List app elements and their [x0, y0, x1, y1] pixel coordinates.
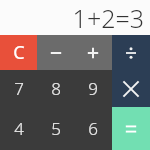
staticText: 5: [51, 117, 61, 140]
staticText: 4: [14, 117, 24, 140]
button[interactable]: 5: [37, 107, 74, 150]
staticText: 1+2=3: [72, 1, 144, 35]
staticText: 8: [51, 77, 61, 100]
button[interactable]: 8: [37, 70, 74, 107]
button[interactable]: 6: [74, 107, 112, 150]
button[interactable]: C: [0, 35, 37, 70]
staticText: C: [13, 40, 25, 65]
button[interactable]: Plus: [74, 35, 112, 70]
staticText: 9: [88, 77, 98, 100]
button[interactable]: Equals: [112, 107, 150, 150]
button[interactable]: Divide: [112, 35, 150, 70]
staticText: 7: [14, 77, 24, 100]
button[interactable]: Minus: [37, 35, 74, 70]
button[interactable]: 7: [0, 70, 37, 107]
staticText: 6: [88, 117, 98, 140]
button[interactable]: Multiply: [112, 70, 150, 107]
button[interactable]: 4: [0, 107, 37, 150]
button[interactable]: 9: [74, 70, 112, 107]
